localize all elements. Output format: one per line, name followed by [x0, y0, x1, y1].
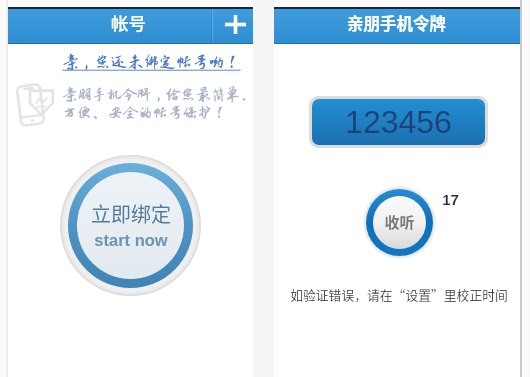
staticText: 方便、安全的帐号保护！ [62, 104, 227, 120]
button[interactable]: 收听 [363, 186, 436, 259]
staticText: 亲朋手机令牌，给您最简单、 [62, 86, 257, 102]
staticText: 收听 [384, 211, 415, 233]
staticText: 亲，您还未绑定帐号哟！ [62, 53, 241, 71]
staticText: 亲朋手机令牌 [347, 11, 446, 35]
button[interactable]: 立即绑定 [60, 155, 201, 296]
staticText: 如验证错误，请在“设置”里校正时间 [290, 285, 508, 304]
staticText: 17 [442, 191, 459, 208]
staticText: 123456 [345, 104, 452, 140]
button[interactable]: 123456 [312, 99, 485, 145]
staticText: 立即绑定 [91, 199, 171, 228]
button[interactable]: Add [213, 9, 253, 44]
staticText: start now [94, 231, 168, 249]
staticText: 帐号 [111, 10, 146, 35]
